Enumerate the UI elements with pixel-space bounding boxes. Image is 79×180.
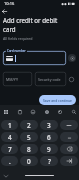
button[interactable]: 6 — [40, 132, 58, 142]
button[interactable]: 9 — [40, 144, 58, 154]
staticText: Add credit or debit card — [3, 16, 63, 34]
staticText: 3 — [47, 121, 51, 130]
button[interactable]: Back — [0, 7, 8, 15]
button[interactable]: Stickers — [29, 108, 36, 115]
button[interactable] — [60, 144, 78, 154]
button[interactable]: 0 — [20, 156, 38, 166]
staticText: 10:16 — [4, 1, 15, 6]
button[interactable]: Settings — [43, 108, 50, 115]
button[interactable]: Save and continue — [39, 95, 76, 105]
staticText: Save and continue — [43, 98, 72, 102]
staticText: 8 — [27, 145, 31, 154]
staticText: 9 — [47, 145, 51, 154]
button[interactable]: Search — [70, 108, 77, 115]
staticText: 1 — [8, 121, 12, 130]
button[interactable]: Keyboard modes — [2, 108, 9, 115]
staticText: 5 — [27, 133, 31, 142]
button[interactable]: 5 — [20, 132, 38, 142]
button[interactable]: 4 — [1, 132, 18, 142]
button[interactable]: . — [1, 156, 18, 166]
button[interactable]: ? — [40, 156, 58, 166]
staticText: 0 — [27, 157, 31, 166]
staticText: 6 — [47, 133, 51, 142]
staticText: 7 — [8, 145, 12, 154]
button[interactable]: Scan card — [68, 54, 76, 62]
button[interactable]: Help — [67, 75, 75, 83]
button[interactable] — [60, 156, 78, 166]
button[interactable]: Hide keyboard — [3, 173, 9, 179]
button[interactable]: Themes — [56, 108, 63, 115]
button[interactable]: 8 — [20, 144, 38, 154]
staticText: All fields required — [3, 36, 33, 41]
button[interactable]: 2 — [20, 120, 38, 130]
staticText: MM/YY — [6, 77, 18, 82]
staticText: 2 — [27, 121, 31, 130]
button[interactable] — [60, 132, 78, 142]
button[interactable]: Clipboard — [16, 108, 23, 115]
staticText: 4 — [8, 133, 12, 142]
button[interactable]: 1 — [1, 120, 18, 130]
button[interactable]: 7 — [1, 144, 18, 154]
staticText: Card number — [7, 49, 26, 53]
staticText: Security code — [38, 77, 61, 82]
staticText: . — [9, 157, 11, 166]
button[interactable] — [60, 120, 78, 130]
button[interactable]: 3 — [40, 120, 58, 130]
staticText: ? — [48, 157, 51, 166]
